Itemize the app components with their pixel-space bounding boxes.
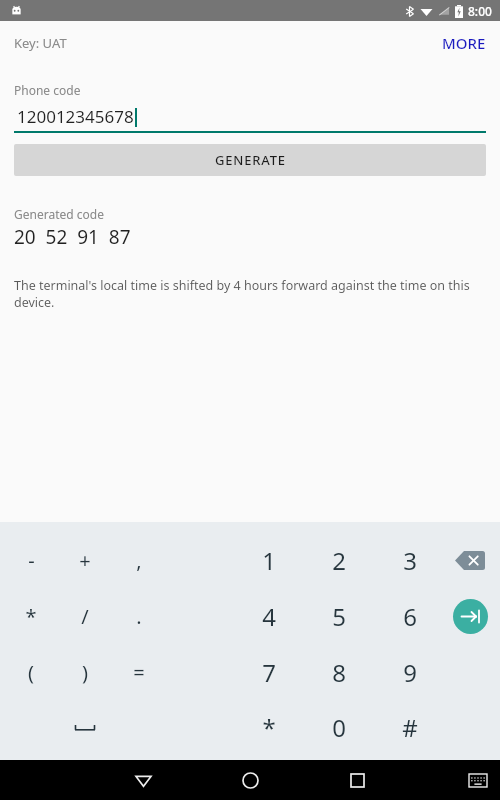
staticText: / bbox=[81, 603, 89, 630]
staticText: 7 bbox=[262, 656, 276, 689]
staticText: 8:00 bbox=[468, 3, 492, 19]
button[interactable]: 3 bbox=[383, 538, 437, 582]
staticText: 4 bbox=[262, 600, 276, 633]
staticText: ( bbox=[28, 659, 34, 686]
button[interactable]: Recent apps bbox=[335, 760, 379, 800]
staticText: 6 bbox=[403, 600, 417, 633]
staticText: * bbox=[262, 711, 276, 744]
staticText: ) bbox=[82, 659, 88, 686]
staticText: = bbox=[133, 659, 145, 686]
staticText: MORE bbox=[442, 33, 486, 53]
button[interactable]: . bbox=[112, 594, 166, 638]
button[interactable]: 0 bbox=[312, 705, 366, 749]
staticText: 8 bbox=[332, 656, 346, 689]
staticText: 3 bbox=[403, 544, 417, 577]
button[interactable]: Home bbox=[228, 760, 272, 800]
button[interactable]: , bbox=[112, 538, 166, 582]
staticText: 2 bbox=[332, 544, 346, 577]
staticText: - bbox=[28, 547, 35, 574]
button[interactable]: * bbox=[242, 705, 296, 749]
button[interactable]: 6 bbox=[383, 594, 437, 638]
button[interactable]: ( bbox=[4, 650, 58, 694]
staticText: * bbox=[25, 603, 37, 630]
button[interactable]: Backspace bbox=[443, 538, 497, 582]
button[interactable]: 1 bbox=[242, 538, 296, 582]
staticText: The terminal's local time is shifted by … bbox=[14, 277, 486, 311]
button[interactable]: + bbox=[58, 538, 112, 582]
staticText: Key: UAT bbox=[14, 34, 67, 52]
button[interactable]: * bbox=[4, 594, 58, 638]
button[interactable]: / bbox=[58, 594, 112, 638]
button[interactable]: 9 bbox=[383, 650, 437, 694]
staticText: 120012345678 bbox=[17, 105, 134, 128]
button[interactable]: 5 bbox=[312, 594, 366, 638]
button[interactable]: 7 bbox=[242, 650, 296, 694]
button[interactable]: # bbox=[383, 705, 437, 749]
button[interactable]: Space bbox=[58, 705, 112, 749]
button[interactable]: MORE bbox=[428, 25, 500, 61]
staticText: 9 bbox=[403, 656, 417, 689]
staticText: 5 bbox=[332, 600, 346, 633]
button[interactable]: = bbox=[112, 650, 166, 694]
staticText: + bbox=[79, 547, 91, 574]
button[interactable]: 4 bbox=[242, 594, 296, 638]
button[interactable]: 2 bbox=[312, 538, 366, 582]
button[interactable]: Back bbox=[121, 760, 165, 800]
staticText: 20 52 91 87 bbox=[14, 224, 131, 250]
button[interactable]: Switch keyboard bbox=[460, 760, 496, 800]
button[interactable]: GENERATE bbox=[14, 144, 486, 176]
staticText: , bbox=[136, 547, 142, 574]
button[interactable]: 120012345678 bbox=[14, 105, 486, 128]
staticText: 1 bbox=[262, 544, 276, 577]
button[interactable]: 8 bbox=[312, 650, 366, 694]
button[interactable]: Enter bbox=[448, 594, 492, 638]
staticText: 0 bbox=[332, 711, 346, 744]
staticText: # bbox=[402, 711, 418, 744]
staticText: Generated code bbox=[14, 206, 104, 222]
button[interactable]: - bbox=[4, 538, 58, 582]
staticText: . bbox=[136, 603, 142, 630]
staticText: GENERATE bbox=[215, 151, 286, 169]
button[interactable]: ) bbox=[58, 650, 112, 694]
staticText: Phone code bbox=[14, 82, 81, 98]
